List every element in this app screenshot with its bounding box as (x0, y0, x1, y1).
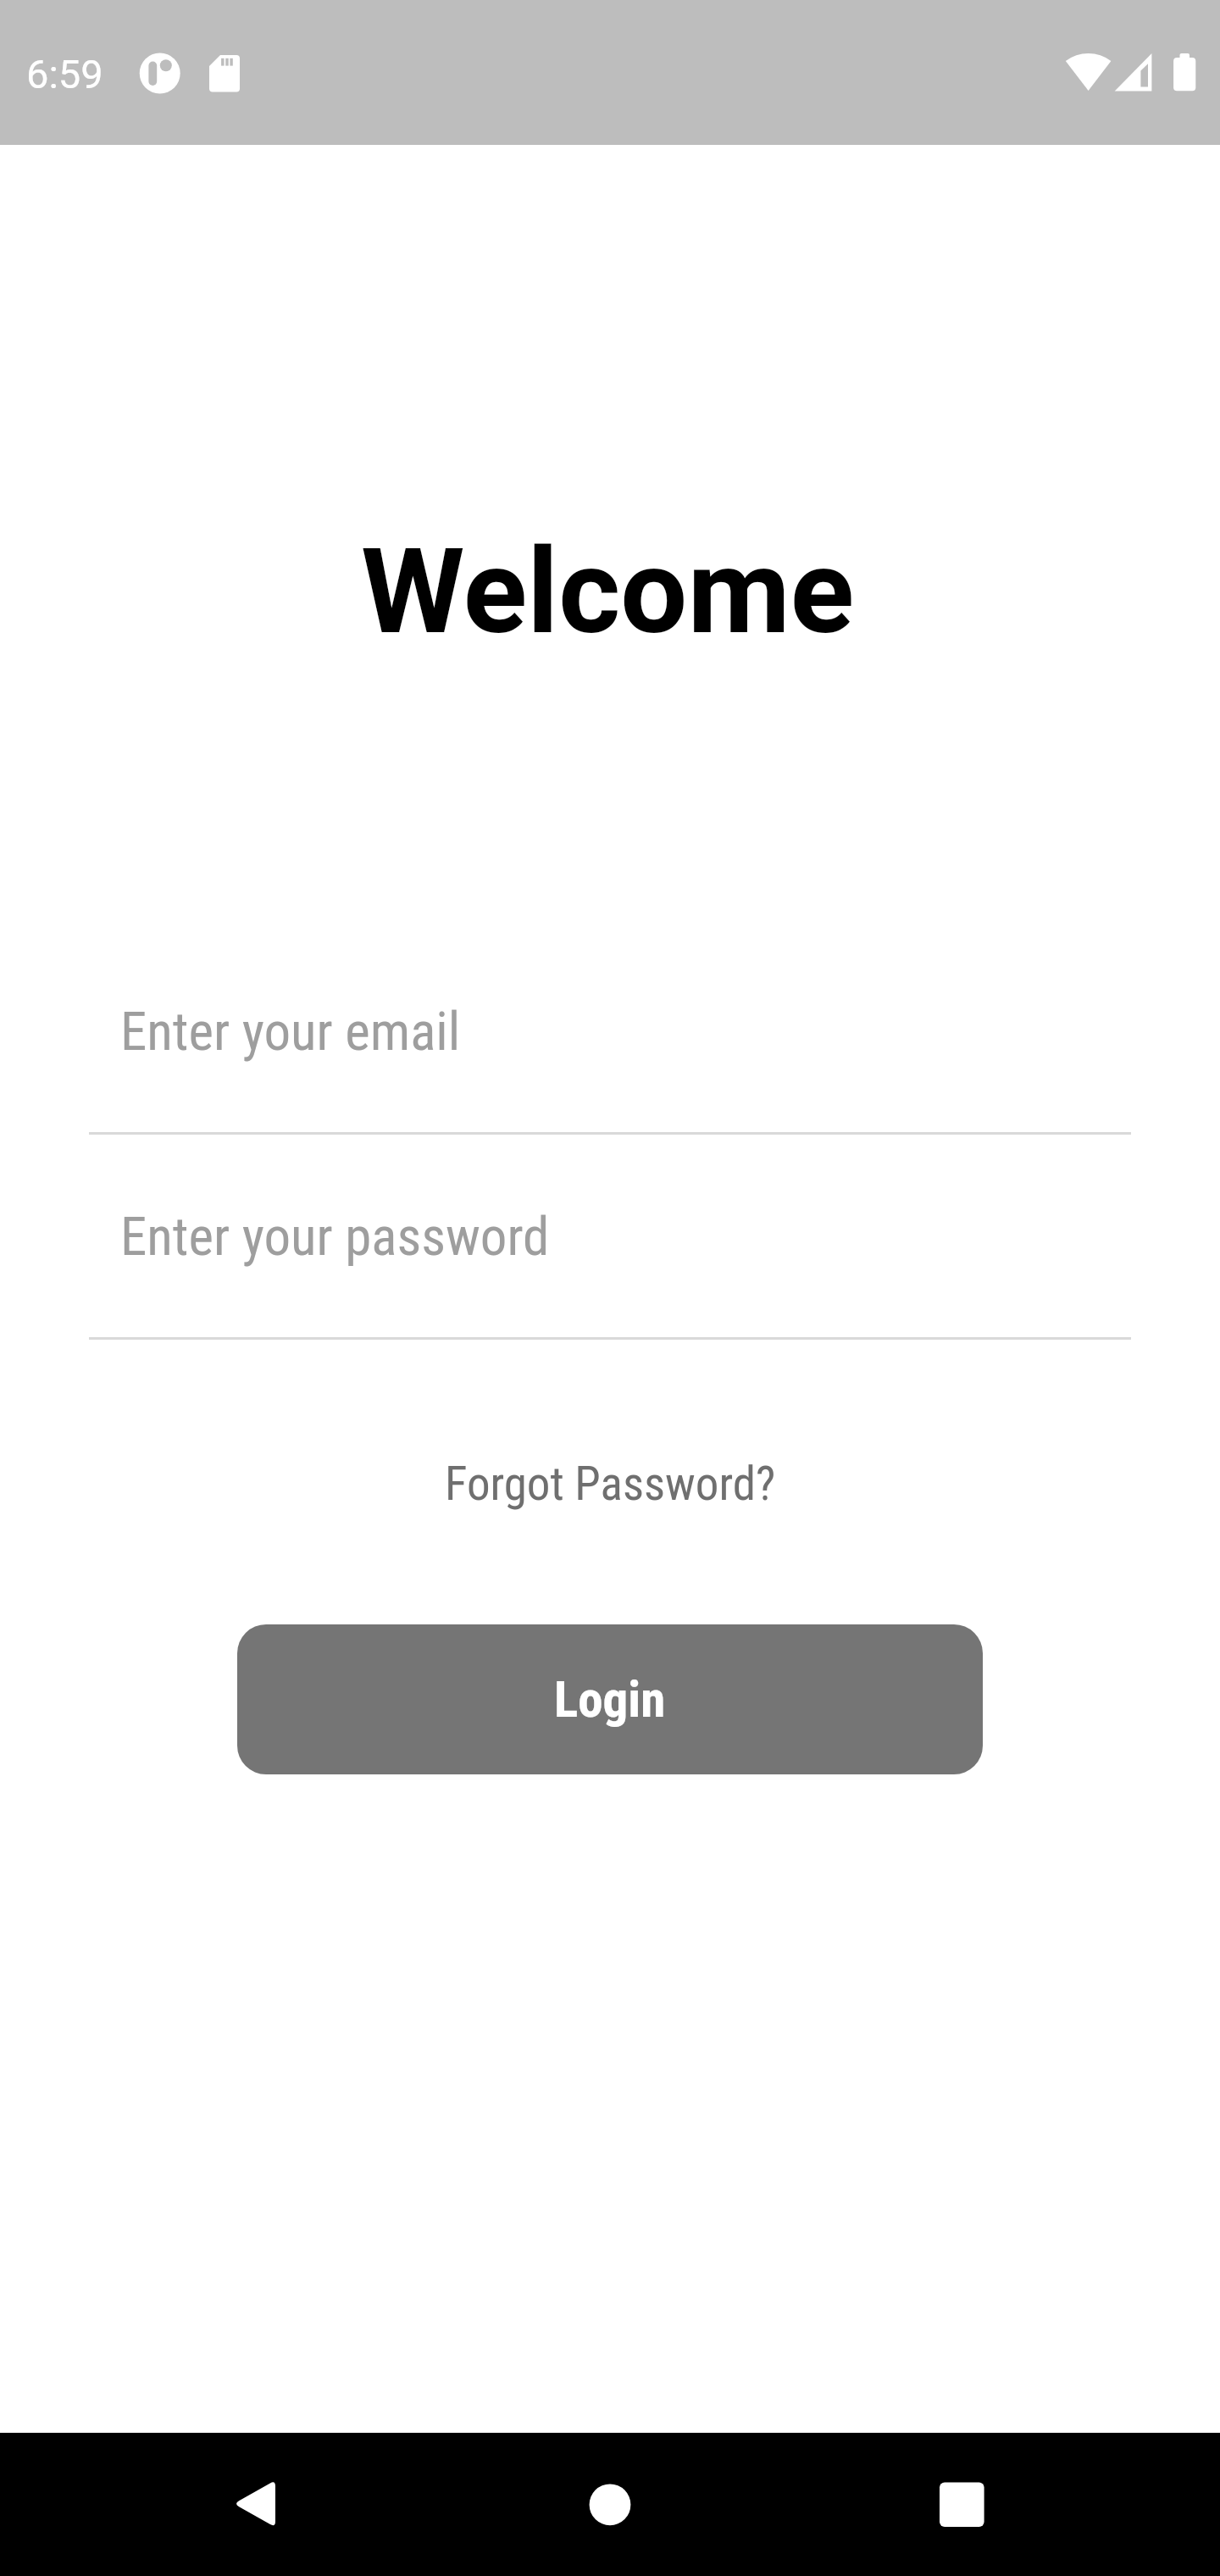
button[interactable]: Enter your email (89, 969, 1131, 1135)
button[interactable]: Login (237, 1624, 983, 1774)
staticText: 6:59 (26, 51, 103, 97)
button[interactable] (201, 2433, 308, 2576)
staticText: Enter your email (120, 1001, 461, 1063)
button[interactable] (908, 2433, 1015, 2576)
button[interactable]: Enter your password (89, 1174, 1131, 1340)
button[interactable] (557, 2433, 663, 2576)
staticText: Welcome (361, 522, 855, 661)
staticText: Enter your password (120, 1206, 550, 1269)
button[interactable]: Forgot Password? (445, 1457, 776, 1511)
staticText: Login (554, 1670, 666, 1729)
staticText: Forgot Password? (445, 1457, 776, 1511)
